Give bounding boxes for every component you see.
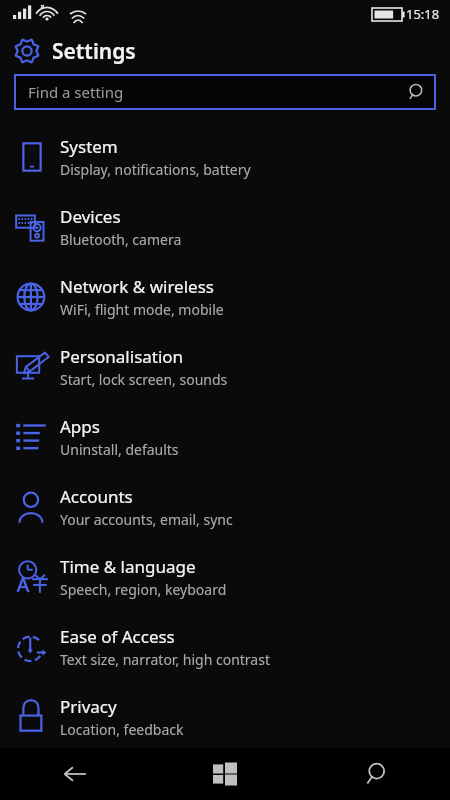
button[interactable]: Back [0,748,150,800]
staticText: Personalisation [60,345,184,368]
staticText: Accounts [60,485,133,508]
button[interactable]: Start [150,748,300,800]
button[interactable]: Apps [0,402,450,472]
staticText: Start, lock screen, sounds [60,370,228,389]
staticText: Uninstall, defaults [60,440,179,459]
staticText: Settings [52,37,136,66]
staticText: Network & wireless [60,275,214,298]
button[interactable]: System [0,122,450,192]
staticText: WiFi, flight mode, mobile [60,300,224,319]
other: Search [406,83,424,101]
staticText: Text size, narrator, high contrast [60,650,270,669]
staticText: Location, feedback [60,720,184,739]
staticText: Apps [60,415,100,438]
staticText: System [60,135,118,158]
staticText: Time & language [60,555,196,578]
button[interactable]: Accounts [0,472,450,542]
staticText: Devices [60,205,121,228]
button[interactable]: Ease of Access [0,612,450,682]
button[interactable]: Network & wireless [0,262,450,332]
staticText: Ease of Access [60,625,175,648]
staticText: Find a setting [28,82,124,102]
staticText: Your accounts, email, sync [60,510,233,529]
button[interactable]: Time & language [0,542,450,612]
button[interactable]: Devices [0,192,450,262]
staticText: Display, notifications, battery [60,160,251,179]
staticText: Privacy [60,695,117,718]
staticText: Speech, region, keyboard [60,580,227,599]
button[interactable]: Settings [0,28,450,74]
button[interactable]: Privacy [0,682,450,752]
button[interactable]: Find a setting [14,74,436,110]
button[interactable]: Personalisation [0,332,450,402]
staticText: Bluetooth, camera [60,230,182,249]
button[interactable]: Search [300,748,450,800]
staticText: 15:18 [406,5,440,23]
